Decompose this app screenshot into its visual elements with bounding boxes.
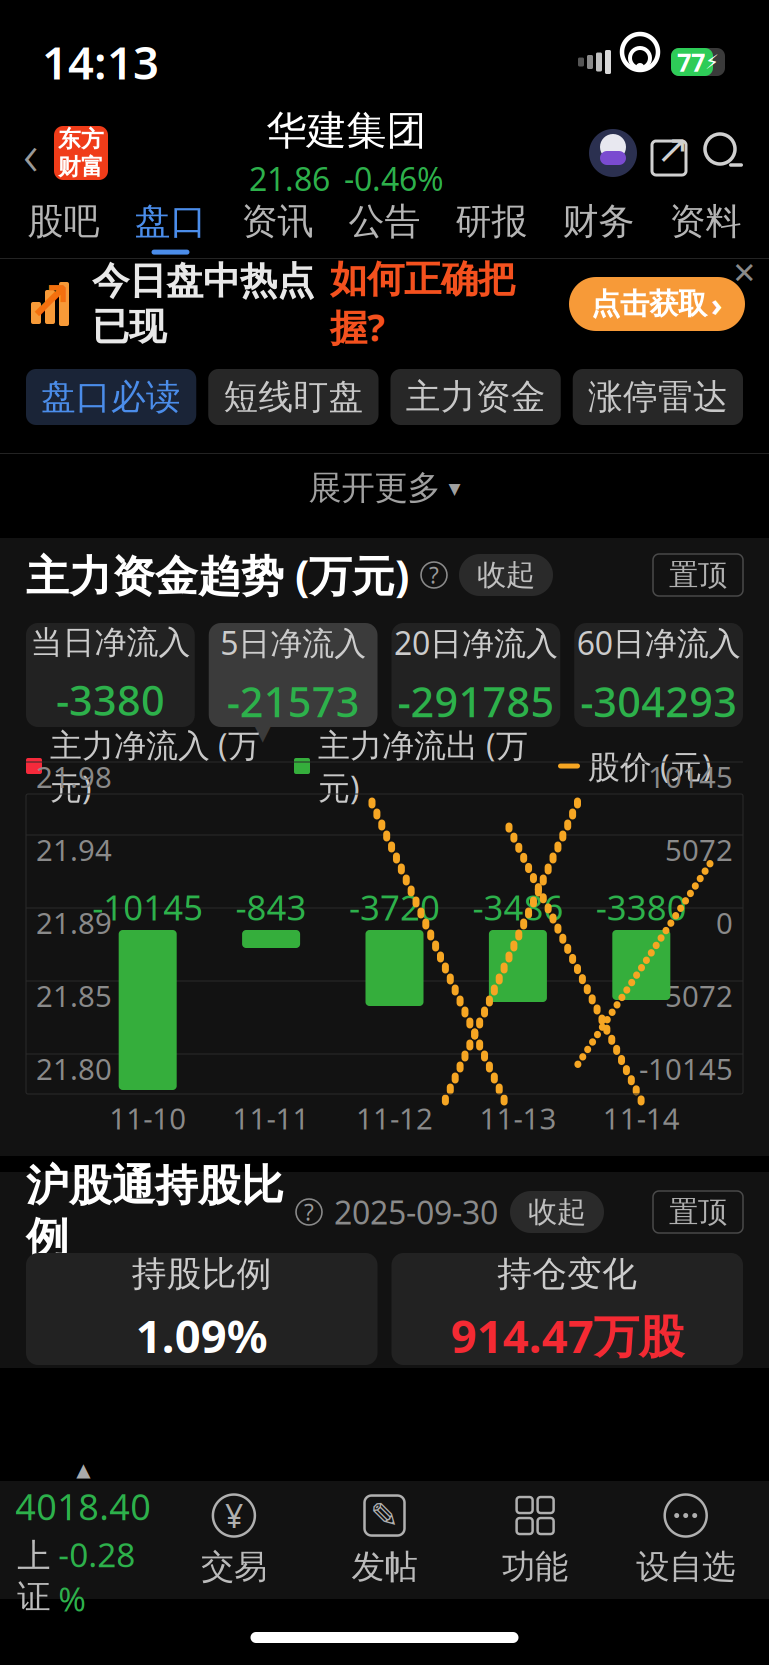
staticText: 11-11 xyxy=(233,1098,310,1137)
staticText: -304293 xyxy=(580,674,737,729)
staticText: 11-12 xyxy=(356,1098,433,1137)
staticText: 914.47万股 xyxy=(451,1305,684,1365)
button[interactable]: ¥ xyxy=(159,1492,309,1587)
staticText: 主力资金 xyxy=(406,376,546,418)
staticText: 当日净流入 xyxy=(30,623,190,662)
staticText: 2025-09-30 xyxy=(334,1191,498,1233)
staticText: 主力净流出 (万元) xyxy=(318,723,528,808)
staticText: 收起 xyxy=(477,557,535,593)
staticText: ? xyxy=(304,1197,314,1227)
staticText: 今日盘中热点已现 xyxy=(92,258,314,350)
staticText: 77 xyxy=(677,45,705,79)
button[interactable]: 研报 xyxy=(438,196,545,258)
staticText: 设自选 xyxy=(636,1546,735,1587)
staticText: 21.86 xyxy=(249,157,330,200)
staticText: 财富 xyxy=(58,153,104,181)
staticText: 21.98 xyxy=(36,757,112,796)
staticText: 东方 xyxy=(58,125,104,153)
button[interactable]: 返回 xyxy=(8,118,54,188)
button[interactable]: 置顶 xyxy=(653,1191,743,1233)
staticText: 交易 xyxy=(201,1546,267,1587)
staticText: -10145 xyxy=(92,884,203,930)
button[interactable]: 持仓变化 xyxy=(391,1253,743,1365)
staticText: 主力资金趋势 (万元) xyxy=(26,547,409,603)
button[interactable]: 短线盯盘 xyxy=(208,369,378,425)
staticText: 短线盯盘 xyxy=(223,376,363,418)
button[interactable]: 东方财富 xyxy=(54,126,108,180)
staticText: 沪股通持股比例 xyxy=(26,1160,284,1264)
staticText: 涨停雷达 xyxy=(588,376,728,418)
button[interactable]: 当日净流入 xyxy=(26,623,195,727)
button[interactable]: 盘口 xyxy=(117,196,224,258)
button[interactable]: 设自选 xyxy=(610,1492,761,1587)
staticText: 股价 (元) xyxy=(588,745,712,787)
staticText: -291785 xyxy=(397,674,554,729)
button[interactable]: 主力资金 xyxy=(390,369,561,425)
staticText: 盘口必读 xyxy=(41,376,181,418)
staticText: -0.28% xyxy=(58,1532,135,1621)
button[interactable]: ↗ xyxy=(0,259,769,349)
button[interactable]: 持股比例 xyxy=(26,1253,377,1365)
staticText: -3380 xyxy=(56,672,165,727)
staticText: 公告 xyxy=(348,199,420,244)
button[interactable]: 盘口必读 xyxy=(26,369,196,425)
button[interactable]: 60日净流入 xyxy=(574,623,743,727)
staticText: -843 xyxy=(236,884,307,930)
staticText: 发帖 xyxy=(351,1546,417,1587)
staticText: 功能 xyxy=(502,1546,568,1587)
staticText: ▲ xyxy=(76,1459,90,1480)
button[interactable]: ▲ xyxy=(8,1459,159,1621)
staticText: 5072 xyxy=(665,830,733,869)
staticText: 5日净流入 xyxy=(220,621,366,664)
staticText: ⚡︎ xyxy=(705,51,719,73)
staticText: -5072 xyxy=(656,976,733,1015)
button[interactable]: 股吧 xyxy=(10,196,117,258)
staticText: 11-10 xyxy=(109,1098,186,1137)
button[interactable]: 资讯 xyxy=(224,196,331,258)
staticText: 21.94 xyxy=(36,830,112,869)
staticText: ¥ xyxy=(225,1494,243,1537)
staticText: 11-13 xyxy=(479,1098,556,1137)
staticText: 资料 xyxy=(669,199,741,244)
staticText: ▾ xyxy=(448,474,460,502)
staticText: 60日净流入 xyxy=(577,621,741,664)
staticText: -10145 xyxy=(639,1049,733,1088)
staticText: ✎ xyxy=(370,1496,399,1535)
button[interactable]: 搜索 xyxy=(697,125,751,181)
button[interactable]: 分享 xyxy=(641,125,697,181)
button[interactable]: 置顶 xyxy=(653,554,743,596)
button[interactable]: 收起 xyxy=(459,554,553,596)
staticText: 华建集团 xyxy=(266,106,426,155)
button[interactable]: 20日净流入 xyxy=(391,623,560,727)
staticText: 置顶 xyxy=(669,1194,727,1230)
staticText: ✕ xyxy=(732,256,757,290)
button[interactable]: 涨停雷达 xyxy=(573,369,743,425)
button[interactable]: 功能 xyxy=(460,1492,610,1587)
staticText: -3486 xyxy=(472,884,563,930)
staticText: 14:13 xyxy=(42,32,159,92)
staticText: 20日净流入 xyxy=(394,621,558,664)
staticText: 收起 xyxy=(528,1194,586,1230)
button[interactable]: 收起 xyxy=(510,1191,604,1233)
staticText: 1.09% xyxy=(136,1305,268,1365)
staticText: -3380 xyxy=(596,884,687,930)
staticText: 持仓变化 xyxy=(497,1253,637,1295)
staticText: 上证 xyxy=(17,1536,50,1617)
button[interactable]: 5日净流入 xyxy=(209,623,378,727)
staticText: 如何正确把握? xyxy=(330,256,515,352)
button[interactable]: 资料 xyxy=(652,196,759,258)
staticText: ↗ xyxy=(27,271,72,331)
staticText: 财务 xyxy=(562,199,634,244)
staticText: 资讯 xyxy=(241,199,313,244)
staticText: ? xyxy=(429,560,439,590)
button[interactable]: ✎ xyxy=(309,1492,460,1587)
button[interactable]: AI助手 xyxy=(585,125,641,181)
staticText: 21.85 xyxy=(36,976,112,1015)
button[interactable]: 公告 xyxy=(331,196,438,258)
staticText: 展开更多 xyxy=(308,467,440,508)
button[interactable]: 财务 xyxy=(545,196,652,258)
staticText: ‹ xyxy=(23,114,39,192)
staticText: 研报 xyxy=(455,199,527,244)
button[interactable]: 展开更多 xyxy=(0,454,769,522)
staticText: 4018.40 xyxy=(15,1482,151,1530)
